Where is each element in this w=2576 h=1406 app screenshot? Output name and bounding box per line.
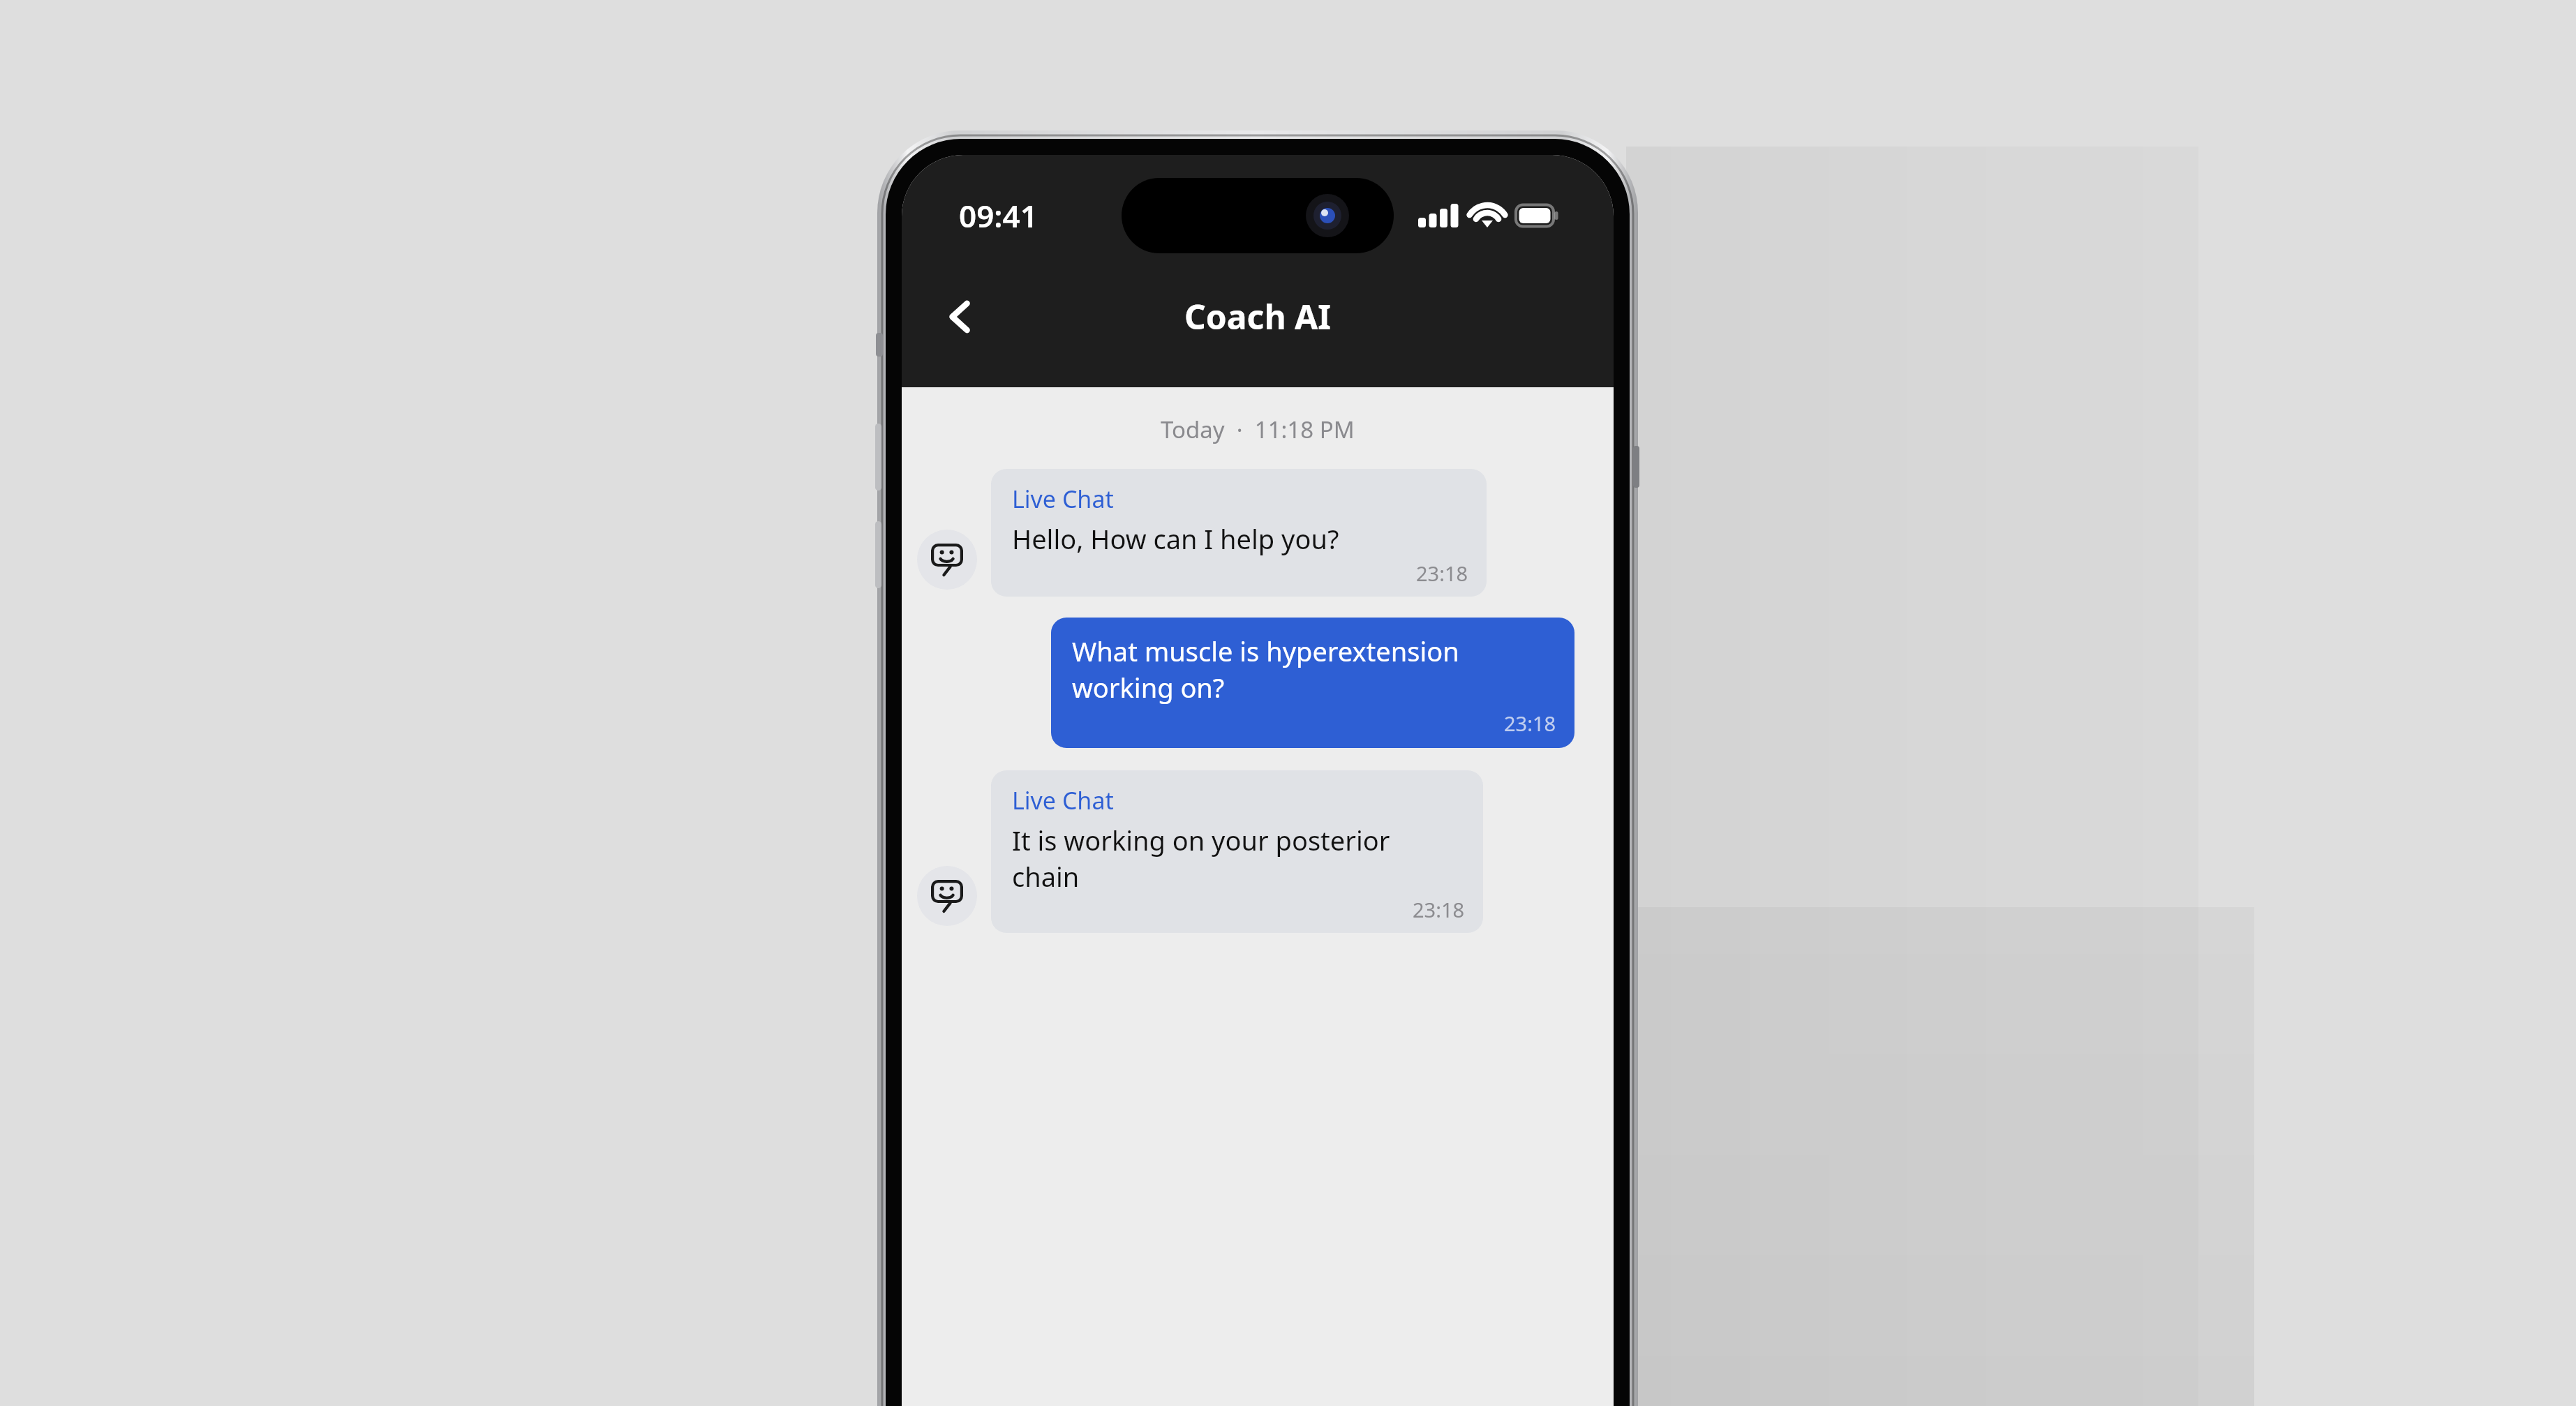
button[interactable]: Chat bot avatar bbox=[917, 866, 977, 926]
button[interactable]: Live Chat bbox=[991, 770, 1483, 933]
staticText: Hello, How can I help you? bbox=[1012, 521, 1339, 557]
staticText: 23:18 bbox=[1413, 896, 1465, 923]
staticText: 09:41 bbox=[959, 195, 1038, 237]
button[interactable]: Chat bot avatar bbox=[917, 530, 977, 590]
staticText: Coach AI bbox=[1184, 294, 1331, 339]
button[interactable]: Live Chat bbox=[991, 469, 1487, 597]
button[interactable]: Back bbox=[927, 283, 994, 350]
staticText: It is working on your posterior chain bbox=[1012, 822, 1390, 895]
staticText: Today · 11:18 PM bbox=[1161, 414, 1355, 445]
staticText: Live Chat bbox=[1012, 483, 1114, 515]
staticText: What muscle is hyperextension working on… bbox=[1072, 633, 1459, 705]
staticText: Live Chat bbox=[1012, 784, 1114, 816]
staticText: 23:18 bbox=[1416, 560, 1468, 587]
staticText: 23:18 bbox=[1504, 710, 1556, 737]
button[interactable]: What muscle is hyperextension working on… bbox=[1051, 618, 1574, 748]
